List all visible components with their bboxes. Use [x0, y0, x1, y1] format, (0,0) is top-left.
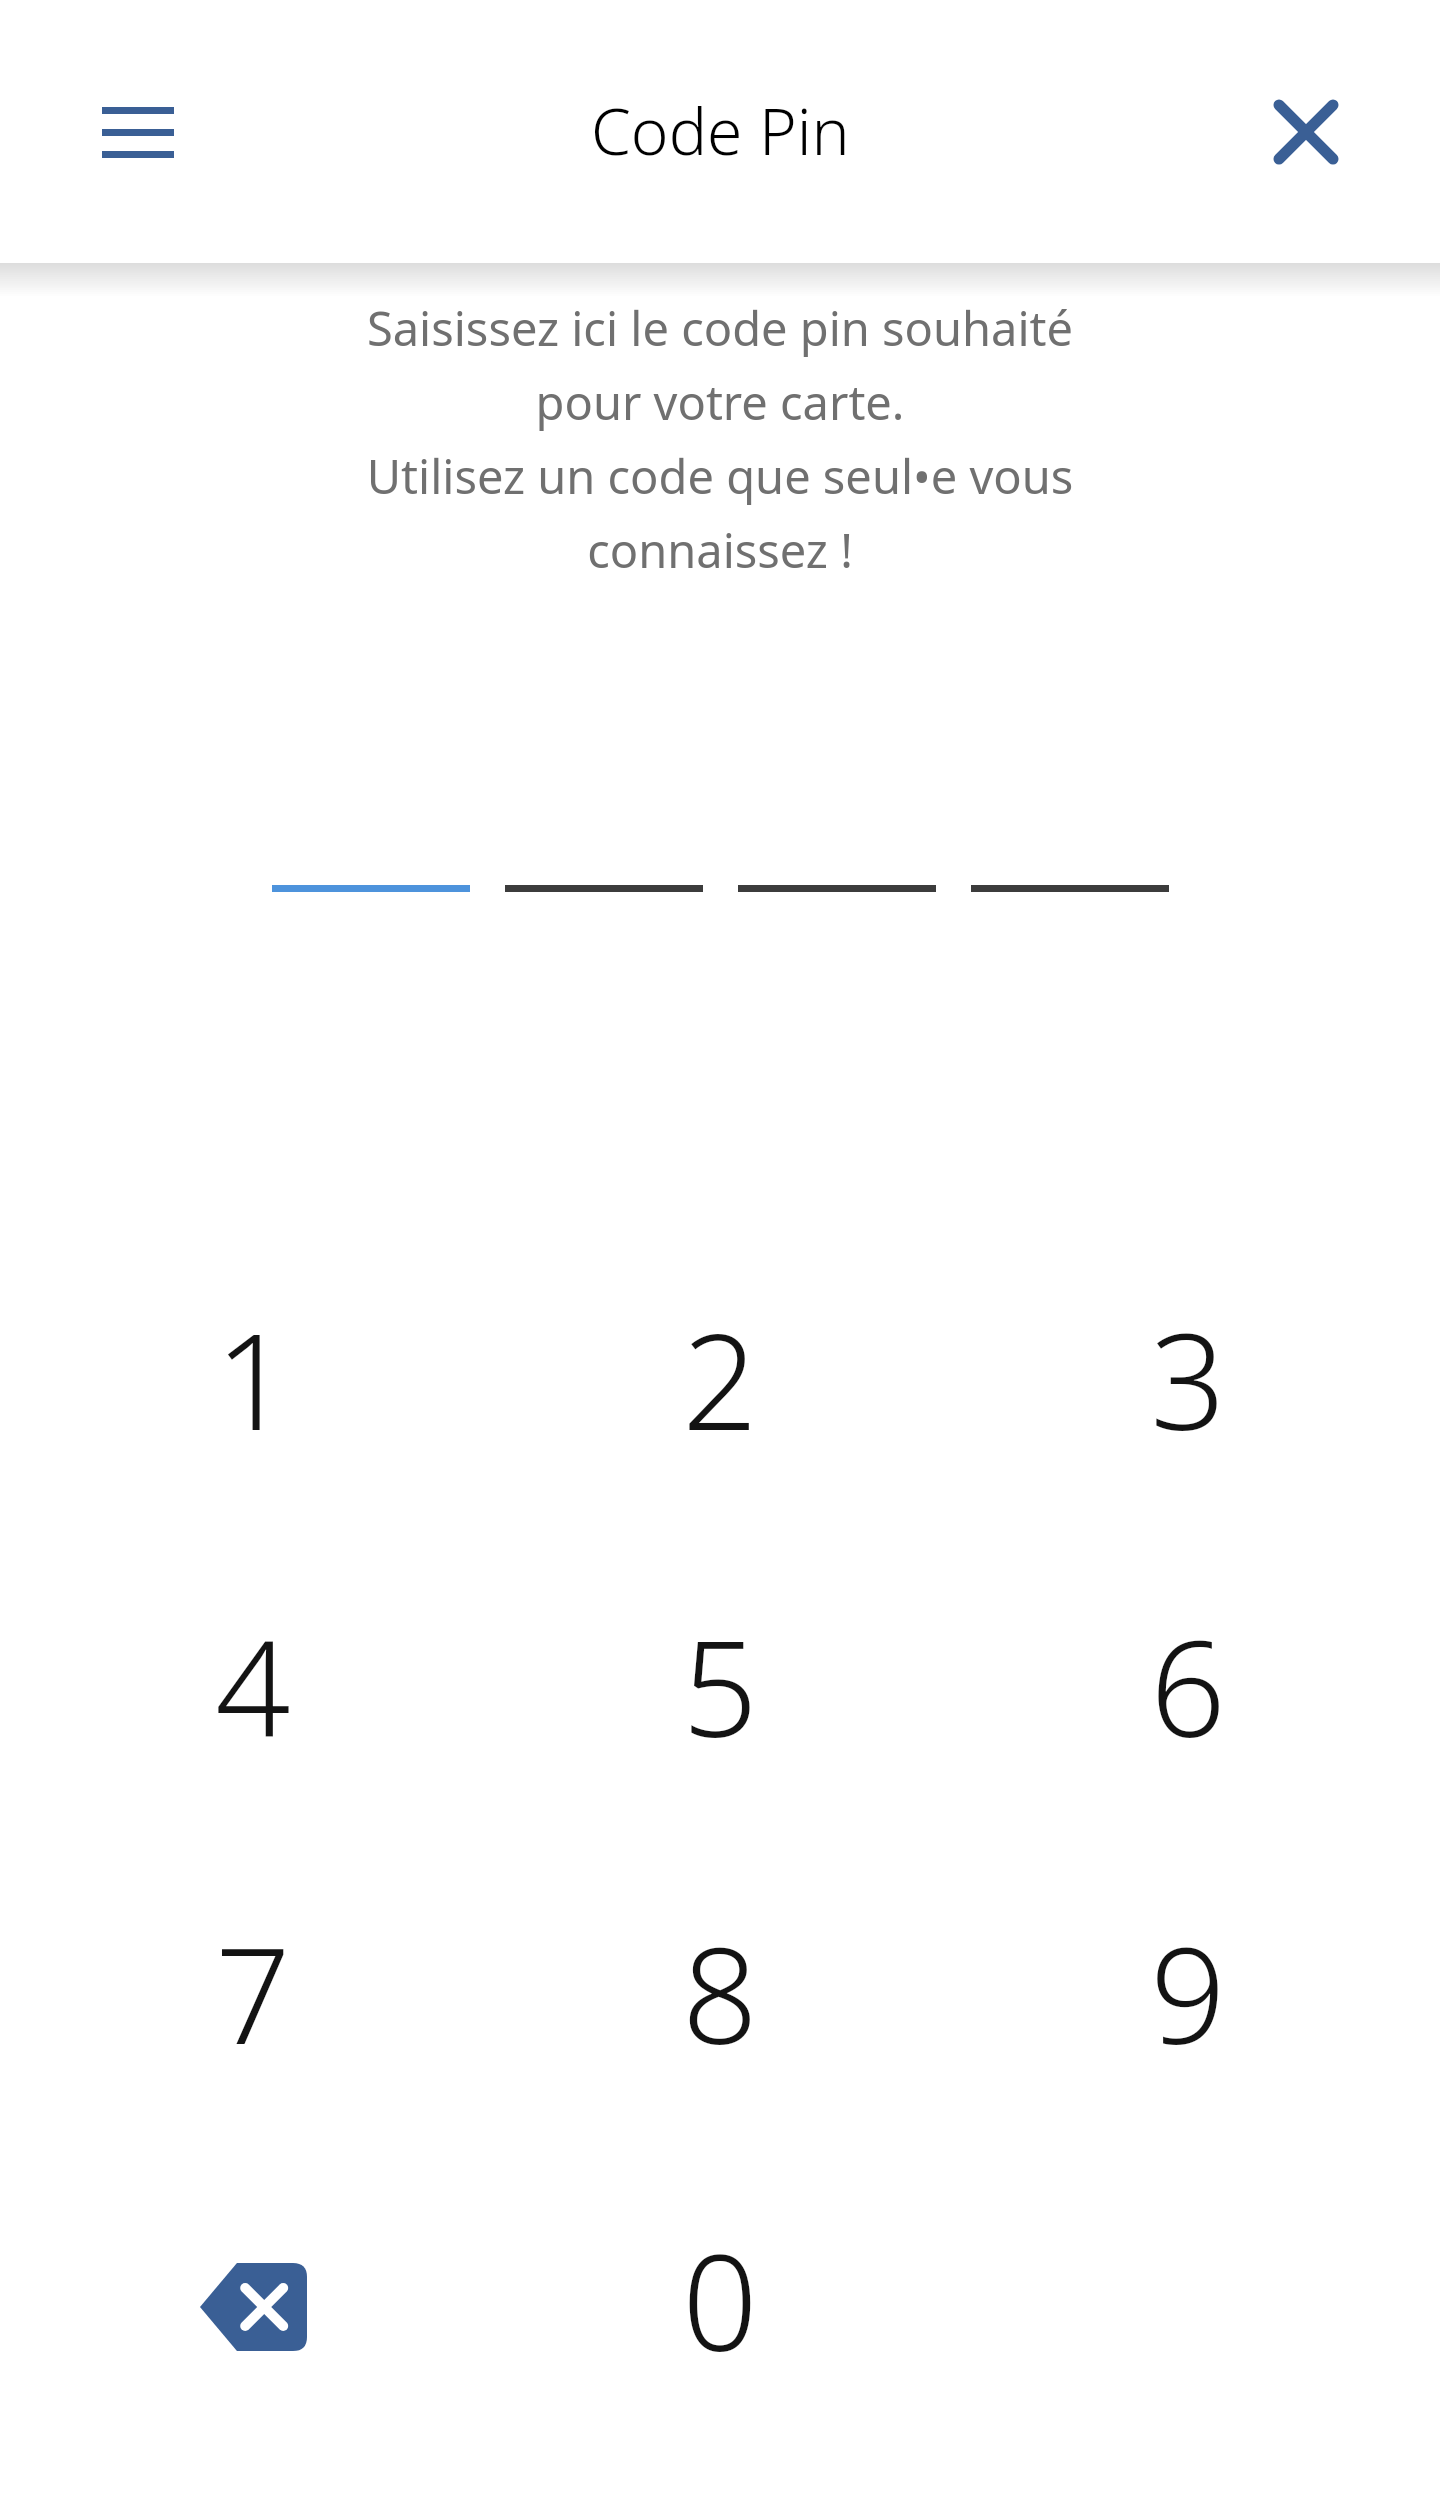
staticText: 9 — [1150, 1903, 1226, 2083]
staticText: 1 — [215, 1289, 291, 1469]
button[interactable]: 2 — [605, 1264, 835, 1494]
staticText: 5 — [682, 1596, 758, 1776]
staticText: 4 — [215, 1596, 291, 1776]
button[interactable]: 7 — [138, 1878, 368, 2108]
button[interactable]: 3 — [1073, 1264, 1303, 1494]
button[interactable]: 5 — [605, 1571, 835, 1801]
staticText: 2 — [682, 1289, 758, 1469]
staticText: 6 — [1150, 1596, 1226, 1776]
button[interactable]: Menu — [78, 72, 198, 192]
staticText: Code Pin — [591, 87, 850, 174]
button[interactable]: 1 — [138, 1264, 368, 1494]
staticText: 0 — [682, 2210, 758, 2390]
button[interactable]: 0 — [605, 2185, 835, 2415]
staticText: 7 — [215, 1903, 291, 2083]
button[interactable]: Backspace — [138, 2192, 368, 2422]
staticText: Saisissez ici le code pin souhaité pour … — [90, 296, 1350, 582]
button[interactable]: 9 — [1073, 1878, 1303, 2108]
button[interactable]: 6 — [1073, 1571, 1303, 1801]
staticText: 3 — [1150, 1289, 1226, 1469]
button[interactable]: 8 — [605, 1878, 835, 2108]
button[interactable]: 4 — [138, 1571, 368, 1801]
button[interactable]: Close — [1246, 72, 1366, 192]
staticText: 8 — [682, 1903, 758, 2083]
